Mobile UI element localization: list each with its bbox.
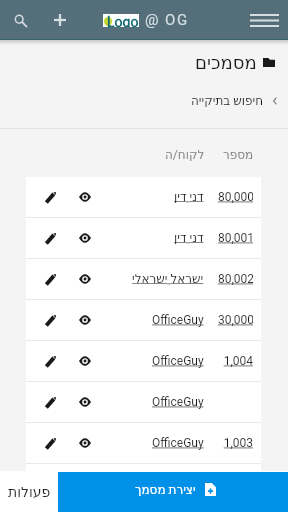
button[interactable]: Edit — [39, 227, 61, 249]
staticText: מספר — [223, 148, 254, 162]
button[interactable]: מסמכים — [0, 39, 275, 86]
button[interactable]: View — [74, 309, 96, 331]
button[interactable]: Edit — [39, 432, 61, 454]
staticText: פעולות — [8, 484, 51, 500]
staticText: 80,002 — [217, 272, 253, 286]
button[interactable]: View — [74, 186, 96, 208]
staticText: ישראל ישראלי — [132, 272, 204, 286]
button[interactable]: Edit — [26, 177, 261, 217]
staticText: יצירת מסמך — [135, 483, 196, 497]
button[interactable]: Edit — [26, 218, 261, 258]
button[interactable]: Menu — [240, 0, 288, 40]
staticText: OfficeGuy — [152, 436, 204, 450]
button[interactable]: Logo — [103, 14, 139, 27]
staticText: 80,000 — [217, 190, 253, 204]
button[interactable]: יצירת מסמך — [58, 472, 288, 512]
staticText: OfficeGuy — [152, 313, 204, 327]
staticText: מסמכים — [195, 52, 257, 73]
button[interactable]: View — [74, 391, 96, 413]
staticText: OfficeGuy — [152, 395, 204, 409]
staticText: דני דין — [174, 190, 204, 204]
button[interactable]: Edit — [26, 423, 261, 463]
button[interactable]: Edit — [39, 350, 61, 372]
staticText: 1,003 — [223, 436, 253, 450]
button[interactable]: Edit — [26, 382, 261, 422]
button[interactable]: Edit — [39, 186, 61, 208]
staticText: OG — [165, 11, 189, 29]
button[interactable]: Edit — [26, 341, 261, 381]
button[interactable]: Edit — [26, 259, 261, 299]
staticText: 1,004 — [223, 354, 253, 368]
button[interactable]: Edit — [39, 268, 61, 290]
button[interactable]: Edit — [39, 309, 61, 331]
button[interactable]: פעולות — [0, 471, 58, 512]
staticText: חיפוש בתיקייה — [191, 94, 263, 108]
staticText: Logo — [107, 14, 139, 27]
staticText: OfficeGuy — [152, 354, 204, 368]
button[interactable]: View — [74, 350, 96, 372]
button[interactable]: חיפוש בתיקייה — [0, 86, 288, 115]
button[interactable]: Edit — [39, 391, 61, 413]
button[interactable]: Search — [0, 0, 40, 40]
button[interactable]: Add — [40, 0, 80, 40]
staticText: 80,001 — [217, 231, 253, 245]
staticText: 30,000 — [217, 313, 253, 327]
button[interactable]: View — [74, 268, 96, 290]
staticText: @ — [145, 11, 159, 29]
staticText: לקוח/ה — [165, 148, 205, 162]
button[interactable]: Edit — [26, 300, 261, 340]
button[interactable]: View — [74, 432, 96, 454]
button[interactable]: View — [74, 227, 96, 249]
staticText: דני דין — [174, 231, 204, 245]
